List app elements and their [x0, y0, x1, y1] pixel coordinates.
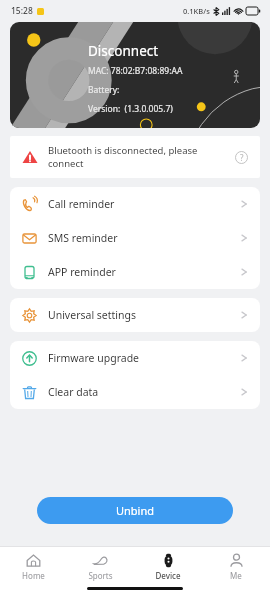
- staticText: Sports: [88, 570, 113, 581]
- staticText: Unbind: [116, 503, 155, 518]
- button[interactable]: Sports: [67, 547, 134, 587]
- button[interactable]: Universal settings: [10, 298, 260, 332]
- staticText: Me: [230, 570, 242, 581]
- staticText: Disconnect: [88, 42, 159, 60]
- staticText: Universal settings: [48, 308, 240, 322]
- button[interactable]: Clear data: [10, 375, 260, 409]
- button[interactable]: Bluetooth is disconnected, please connec…: [10, 136, 260, 178]
- button[interactable]: Help: [235, 151, 248, 164]
- staticText: ?: [240, 152, 244, 163]
- button[interactable]: APP reminder: [10, 255, 260, 289]
- staticText: Clear data: [48, 385, 240, 399]
- button[interactable]: Device: [134, 547, 202, 587]
- staticText: Home: [22, 570, 45, 581]
- button[interactable]: Call reminder: [10, 187, 260, 221]
- staticText: Device: [155, 570, 181, 581]
- button[interactable]: SMS reminder: [10, 221, 260, 255]
- button[interactable]: Firmware upgrade: [10, 341, 260, 375]
- button[interactable]: Me: [202, 547, 270, 587]
- button[interactable]: Unbind: [37, 497, 233, 524]
- staticText: SMS reminder: [48, 231, 240, 245]
- button[interactable]: Home: [0, 547, 67, 587]
- staticText: APP reminder: [48, 265, 240, 279]
- staticText: Call reminder: [48, 197, 240, 211]
- staticText: 15:28: [11, 5, 33, 17]
- staticText: MAC: 78:02:B7:08:89:AA: [88, 65, 183, 77]
- staticText: Firmware upgrade: [48, 351, 240, 365]
- staticText: Version: (1.3.0.005.7): [88, 103, 173, 115]
- staticText: 0.1KB/s: [183, 6, 210, 16]
- staticText: Battery:: [88, 84, 120, 96]
- staticText: Bluetooth is disconnected, please connec…: [48, 144, 227, 170]
